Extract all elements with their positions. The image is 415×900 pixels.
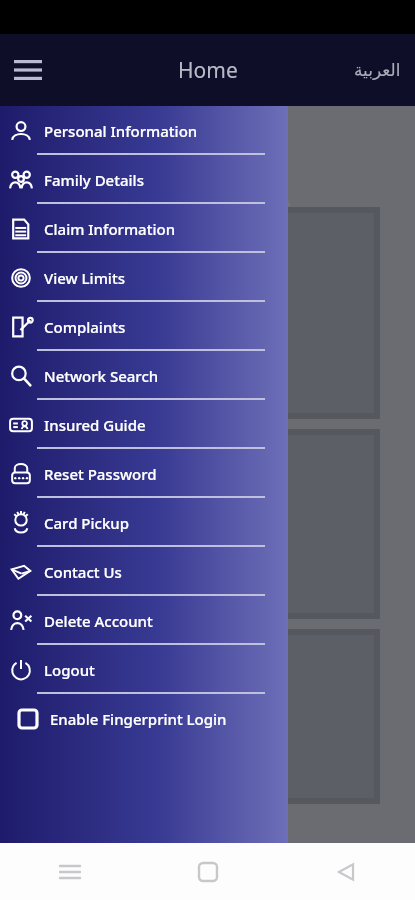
button[interactable]: Back [277,843,415,900]
button[interactable]: View Limits [0,253,288,302]
staticText: Family Details [44,170,144,190]
button[interactable]: Card Pickup [0,498,288,547]
staticText: Delete Account [44,611,153,631]
staticText: Reset Password [44,464,157,484]
button[interactable]: Claim Information [0,204,288,253]
button[interactable]: Family Details [0,155,288,204]
staticText: Complaints [44,317,126,337]
staticText: Card Pickup [44,513,130,533]
button[interactable]: Contact Us [0,547,288,596]
button[interactable]: Reset Password [0,449,288,498]
staticText: Claim Information [44,219,176,239]
button[interactable]: العربية [346,52,409,88]
button[interactable]: Open navigation drawer [4,46,52,94]
staticText: Logout [44,660,95,680]
button[interactable]: Home [139,843,277,900]
button[interactable]: Recent apps [0,843,139,900]
button[interactable]: Delete Account [0,596,288,645]
staticText: Enable Fingerprint Login [50,709,227,729]
staticText: Personal Information [44,121,198,141]
staticText: العربية [354,60,401,80]
button[interactable]: Logout [0,645,288,694]
staticText: View Limits [44,268,125,288]
button[interactable]: Insured Guide [0,400,288,449]
staticText: Insured Guide [44,415,146,435]
button[interactable]: Enable Fingerprint Login [0,694,288,743]
staticText: Contact Us [44,562,122,582]
button[interactable]: Complaints [0,302,288,351]
button[interactable]: Personal Information [0,106,288,155]
button[interactable]: Network Search [0,351,288,400]
staticText: Network Search [44,366,159,386]
staticText: Home [178,56,238,85]
